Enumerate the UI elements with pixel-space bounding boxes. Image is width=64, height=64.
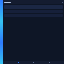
- button[interactable]: Navigation rail: [0, 0, 3, 64]
- button[interactable]: More options: [3, 0, 64, 4]
